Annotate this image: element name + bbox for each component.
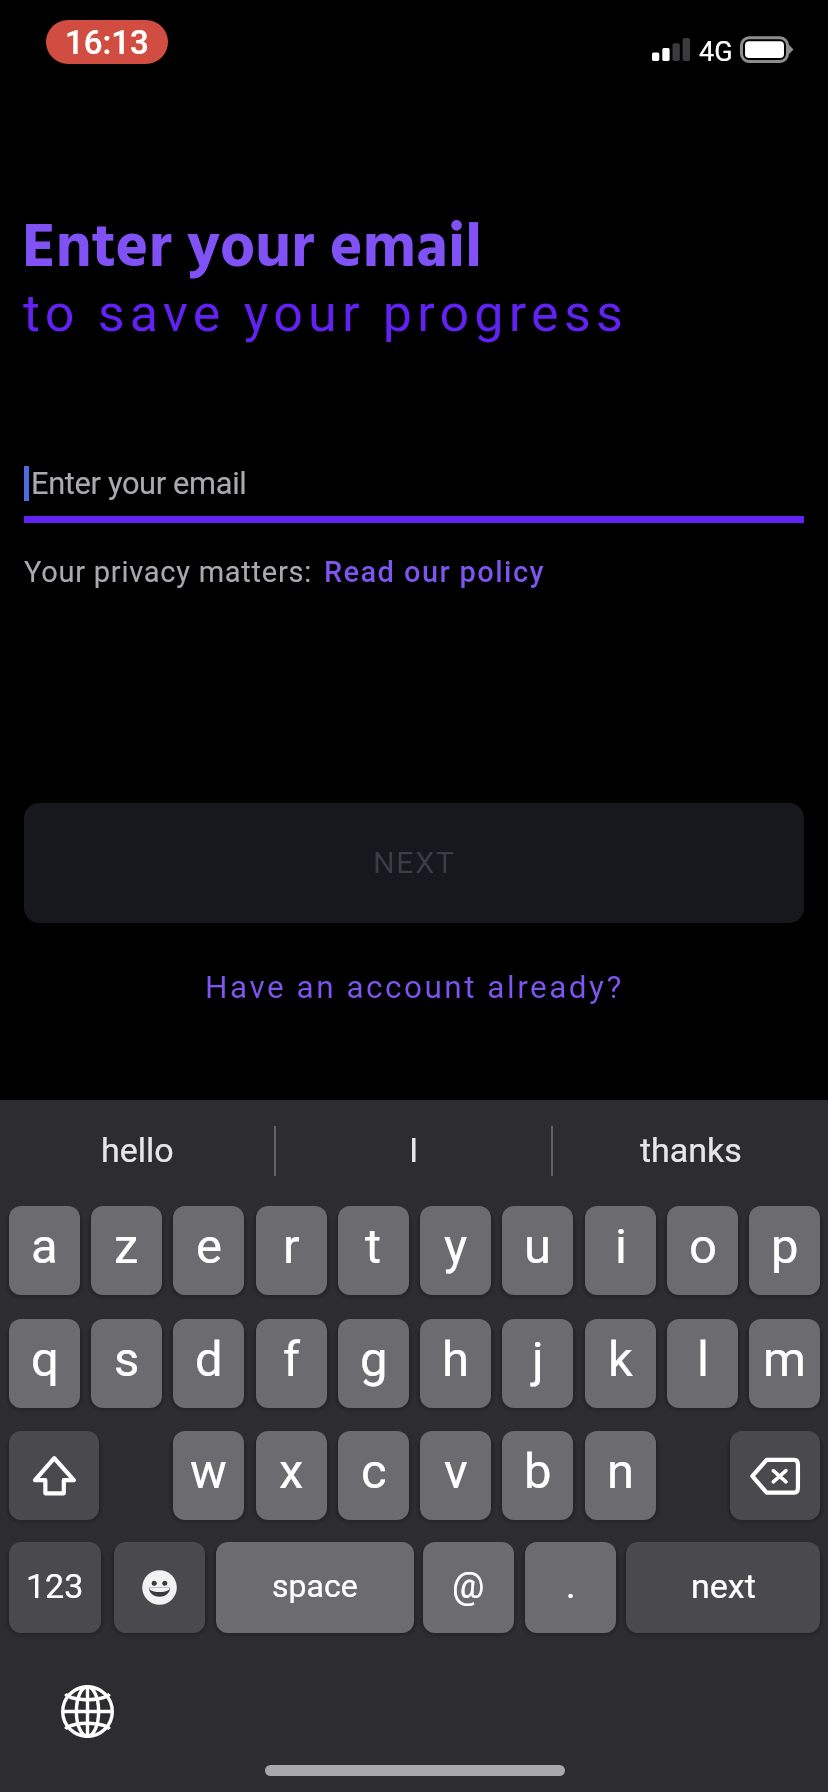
staticText: space: [272, 1567, 358, 1605]
button[interactable]: a: [9, 1206, 80, 1295]
staticText: e: [196, 1218, 222, 1275]
button[interactable]: 123: [9, 1542, 101, 1633]
staticText: Have an account already?: [205, 969, 624, 1006]
button[interactable]: thanks: [553, 1102, 828, 1197]
button[interactable]: I: [276, 1102, 551, 1197]
staticText: Enter your email: [31, 465, 247, 501]
button[interactable]: o: [667, 1206, 738, 1295]
button[interactable]: @: [423, 1542, 514, 1633]
button[interactable]: i: [585, 1206, 656, 1295]
button[interactable]: k: [585, 1319, 656, 1408]
button[interactable]: Read our policy: [324, 555, 546, 589]
staticText: f: [283, 1331, 301, 1388]
button[interactable]: c: [338, 1431, 409, 1520]
staticText: x: [279, 1443, 304, 1500]
button[interactable]: Enter your email: [20, 450, 808, 522]
staticText: i: [615, 1218, 627, 1275]
staticText: .: [566, 1565, 576, 1607]
staticText: o: [689, 1218, 717, 1275]
staticText: next: [691, 1566, 756, 1606]
staticText: k: [608, 1331, 633, 1388]
staticText: 4G: [699, 36, 733, 68]
staticText: 123: [26, 1566, 84, 1606]
staticText: y: [444, 1218, 468, 1275]
staticText: v: [444, 1443, 468, 1500]
staticText: b: [524, 1443, 552, 1500]
staticText: @: [452, 1565, 485, 1607]
staticText: g: [360, 1331, 388, 1388]
button[interactable]: h: [420, 1319, 491, 1408]
staticText: hello: [101, 1130, 174, 1170]
button[interactable]: Have an account already?: [114, 955, 714, 1019]
staticText: thanks: [640, 1130, 742, 1170]
button[interactable]: y: [420, 1206, 491, 1295]
button[interactable]: w: [173, 1431, 244, 1520]
button[interactable]: m: [749, 1319, 820, 1408]
button[interactable]: Shift: [9, 1431, 99, 1520]
staticText: j: [532, 1331, 544, 1388]
staticText: m: [763, 1331, 806, 1388]
staticText: z: [114, 1218, 139, 1275]
staticText: Read our policy: [324, 555, 546, 589]
button[interactable]: Emoji: [114, 1542, 205, 1633]
button[interactable]: g: [338, 1319, 409, 1408]
staticText: p: [771, 1218, 799, 1275]
button[interactable]: hello: [0, 1102, 275, 1197]
button[interactable]: s: [91, 1319, 162, 1408]
staticText: l: [697, 1331, 709, 1388]
staticText: h: [442, 1331, 469, 1388]
button[interactable]: n: [585, 1431, 656, 1520]
button[interactable]: d: [173, 1319, 244, 1408]
staticText: n: [607, 1443, 635, 1500]
staticText: NEXT: [373, 845, 456, 881]
button[interactable]: j: [502, 1319, 573, 1408]
button[interactable]: f: [256, 1319, 327, 1408]
staticText: s: [114, 1331, 140, 1388]
staticText: t: [365, 1218, 382, 1275]
staticText: d: [195, 1331, 223, 1388]
button[interactable]: r: [256, 1206, 327, 1295]
staticText: Enter your email: [22, 201, 483, 300]
button[interactable]: b: [502, 1431, 573, 1520]
staticText: I: [409, 1130, 419, 1170]
button[interactable]: q: [9, 1319, 80, 1408]
button[interactable]: u: [502, 1206, 573, 1295]
staticText: Your privacy matters:: [24, 555, 320, 589]
button[interactable]: x: [256, 1431, 327, 1520]
staticText: to save your progress: [23, 283, 628, 344]
staticText: a: [31, 1218, 58, 1275]
button[interactable]: p: [749, 1206, 820, 1295]
button[interactable]: l: [667, 1319, 738, 1408]
staticText: w: [190, 1443, 227, 1500]
button[interactable]: Backspace: [730, 1431, 820, 1520]
staticText: u: [524, 1218, 552, 1275]
staticText: c: [361, 1443, 387, 1500]
button[interactable]: .: [525, 1542, 616, 1633]
staticText: r: [283, 1218, 300, 1275]
button[interactable]: v: [420, 1431, 491, 1520]
button[interactable]: Change keyboard language: [51, 1675, 124, 1748]
staticText: 16:13: [65, 23, 149, 62]
button[interactable]: next: [626, 1542, 820, 1633]
button[interactable]: space: [216, 1542, 414, 1633]
staticText: q: [31, 1331, 59, 1388]
button[interactable]: z: [91, 1206, 162, 1295]
button[interactable]: t: [338, 1206, 409, 1295]
button[interactable]: NEXT: [24, 803, 804, 923]
button[interactable]: e: [173, 1206, 244, 1295]
